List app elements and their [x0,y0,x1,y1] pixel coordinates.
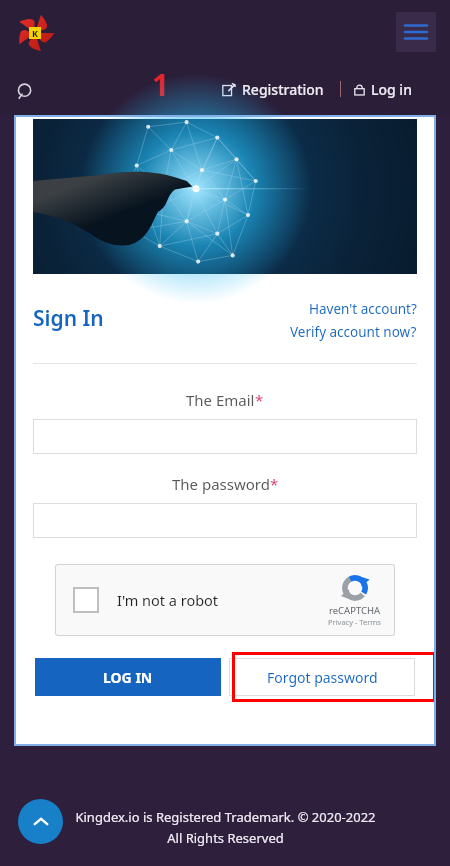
button[interactable]: Verify account now? [290,323,417,341]
staticText: Log in [371,80,412,99]
staticText: LOG IN [103,668,153,687]
staticText: All Rights Reserved [167,829,284,847]
button[interactable] [33,503,417,538]
button[interactable]: Menu [396,12,436,52]
button[interactable]: Forgot password [229,658,415,696]
button[interactable]: Haven't account? [309,300,417,318]
button[interactable]: I'm not a robot [55,564,395,636]
staticText: 1 [152,64,170,105]
staticText: * [255,390,264,410]
staticText: Sign In [33,304,104,333]
button[interactable]: Log in [353,80,412,99]
button[interactable]: Registration [222,80,324,99]
staticText: The Email [186,390,255,410]
staticText: Kingdex.io is Registered Trademark. © 20… [75,808,376,826]
staticText: Forgot password [267,668,378,687]
button[interactable] [33,419,417,454]
staticText: Privacy - Terms [328,617,381,627]
staticText: The password [172,474,270,494]
staticText: K [32,27,38,39]
button[interactable]: Kingdex home [14,12,56,54]
button[interactable]: LOG IN [35,658,221,696]
staticText: Registration [242,80,324,99]
staticText: * [270,474,279,494]
staticText: I'm not a robot [117,590,219,610]
button[interactable]: Search [12,78,40,106]
button[interactable]: Scroll to top [18,799,63,844]
staticText: reCAPTCHA [329,604,381,617]
